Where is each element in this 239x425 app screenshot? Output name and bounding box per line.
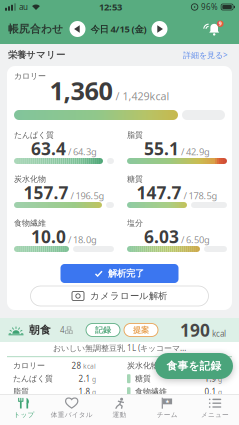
button[interactable]: 帳尻合わせ [8,22,63,35]
staticText: 157.7 [23,181,68,204]
staticText: 運動 [112,411,126,419]
button[interactable]: 次の日 [151,21,167,37]
button[interactable]: 前の日 [69,21,85,37]
staticText: kcal [212,328,226,339]
staticText: 食物繊維 [14,218,46,228]
staticText: カロリー [14,71,46,81]
staticText: / 64.3g [68,145,97,158]
button[interactable]: トップ [0,398,48,419]
staticText: g [218,388,222,397]
staticText: 4品 [60,325,73,335]
staticText: 糖質 [135,374,151,384]
button[interactable]: メニュー [191,398,239,419]
button[interactable]: 体重バイタル [48,398,96,419]
staticText: 今日 4/15 (金) [90,23,146,35]
button[interactable]: 食事を記録 [155,353,233,379]
staticText: メニュー [201,411,229,419]
staticText: 塩分 [127,218,143,228]
staticText: 朝食 [29,323,51,336]
staticText: 食事を記録 [166,359,221,372]
staticText: / 18.0g [68,233,97,246]
staticText: たんぱく質 [13,374,53,384]
staticText: 96% [201,2,218,12]
staticText: 栄養サマリー [8,49,65,61]
button[interactable]: 記録 [86,323,120,336]
staticText: 63.4 [31,137,66,160]
staticText: au [19,2,28,12]
staticText: g [218,375,222,384]
staticText: / 1,429kcal [115,89,169,103]
button[interactable]: カメラロール解析 [30,286,208,306]
staticText: 食物繊維 [135,387,167,397]
staticText: 2.2 [204,360,216,371]
button[interactable]: 運動 [96,398,143,419]
staticText: / 178.5g [183,189,217,202]
staticText: トップ [13,411,34,419]
staticText: 記録 [95,325,111,335]
button[interactable]: 詳細を見る> [183,50,228,60]
button[interactable]: 提案 [124,323,158,336]
staticText: 1,360 [49,74,112,107]
button[interactable]: ★ [143,398,191,419]
staticText: チーム [157,411,178,419]
staticText: 9 [219,20,222,27]
staticText: 10.0 [31,225,66,248]
staticText: g [92,388,96,397]
staticText: ★ [165,398,170,405]
staticText: 1.8 [78,386,90,397]
staticText: 詳細を見る> [183,50,228,60]
staticText: カロリー [13,361,45,371]
staticText: 体重バイタル [51,411,93,419]
button[interactable]: 解析完了 [60,264,178,283]
staticText: 糖質 [127,174,143,184]
staticText: / 42.9g [181,145,210,158]
staticText: 脂質 [127,130,143,140]
staticText: 炭水化物 [127,361,159,371]
staticText: 147.7 [136,181,181,204]
button[interactable]: お知らせ [203,20,224,38]
staticText: 55.1 [144,137,179,160]
staticText: 解析完了 [108,268,144,279]
staticText: / 6.50g [181,233,210,246]
staticText: 脂質 [13,387,29,397]
staticText: 12:53 [99,1,122,13]
staticText: 28 [71,360,81,371]
staticText: 炭水化物 [14,174,46,184]
staticText: 6.03 [144,225,179,248]
staticText: たんぱく質 [14,130,54,140]
staticText: 2.1 [78,373,90,384]
staticText: / 196.5g [70,189,104,202]
staticText: kcal [83,362,96,371]
staticText: 1.9 [204,373,216,384]
staticText: 190 [180,318,210,341]
staticText: カメラロール解析 [90,290,167,302]
staticText: 0.1 [204,386,216,397]
staticText: 提案 [133,325,149,335]
staticText: g [92,375,96,384]
staticText: 帳尻合わせ [8,22,63,35]
staticText: g [218,362,222,371]
staticText: おいしい無調整豆乳 1L (キッコーマ… [53,343,186,353]
